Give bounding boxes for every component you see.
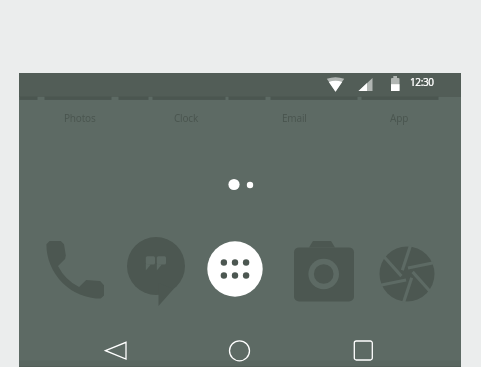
button[interactable]: Photos bbox=[40, 110, 120, 126]
button[interactable] bbox=[224, 335, 255, 366]
button[interactable] bbox=[41, 237, 109, 305]
button[interactable] bbox=[376, 243, 438, 305]
button[interactable] bbox=[123, 233, 189, 309]
button[interactable]: Email bbox=[254, 110, 334, 126]
button[interactable]: Clock bbox=[146, 110, 226, 126]
staticText: Email bbox=[282, 111, 307, 125]
button[interactable] bbox=[348, 335, 379, 366]
button[interactable] bbox=[290, 237, 358, 305]
staticText: 12:30 bbox=[410, 75, 434, 89]
staticText: App bbox=[390, 111, 409, 125]
staticText: Photos bbox=[64, 111, 96, 125]
button[interactable]: App bbox=[359, 110, 439, 126]
button[interactable] bbox=[204, 238, 266, 300]
button[interactable] bbox=[95, 336, 137, 366]
staticText: Clock bbox=[174, 111, 199, 125]
